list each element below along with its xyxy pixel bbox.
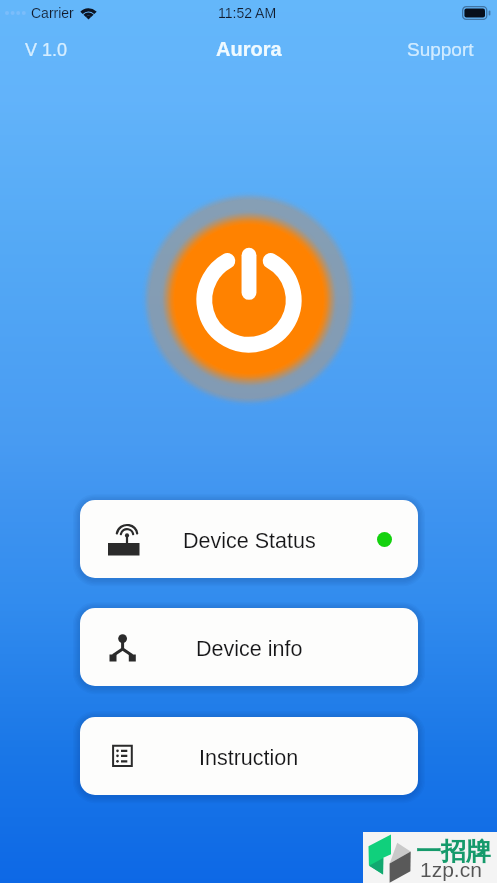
- button[interactable]: Instruction: [80, 717, 418, 795]
- staticText: Carrier: [31, 5, 74, 21]
- staticText: Instruction: [199, 746, 299, 770]
- staticText: 一招牌: [416, 836, 491, 867]
- button[interactable]: Device Status: [80, 500, 418, 578]
- button[interactable]: Support: [407, 39, 474, 60]
- staticText: 11:52 AM: [218, 5, 277, 21]
- button[interactable]: Device info: [80, 608, 418, 686]
- button[interactable]: Power: [134, 184, 364, 414]
- staticText: Device Status: [183, 529, 316, 553]
- staticText: Device info: [196, 637, 303, 661]
- staticText: 1zp.cn: [420, 858, 482, 881]
- button[interactable]: V 1.0: [25, 40, 68, 60]
- staticText: Aurora: [216, 38, 282, 60]
